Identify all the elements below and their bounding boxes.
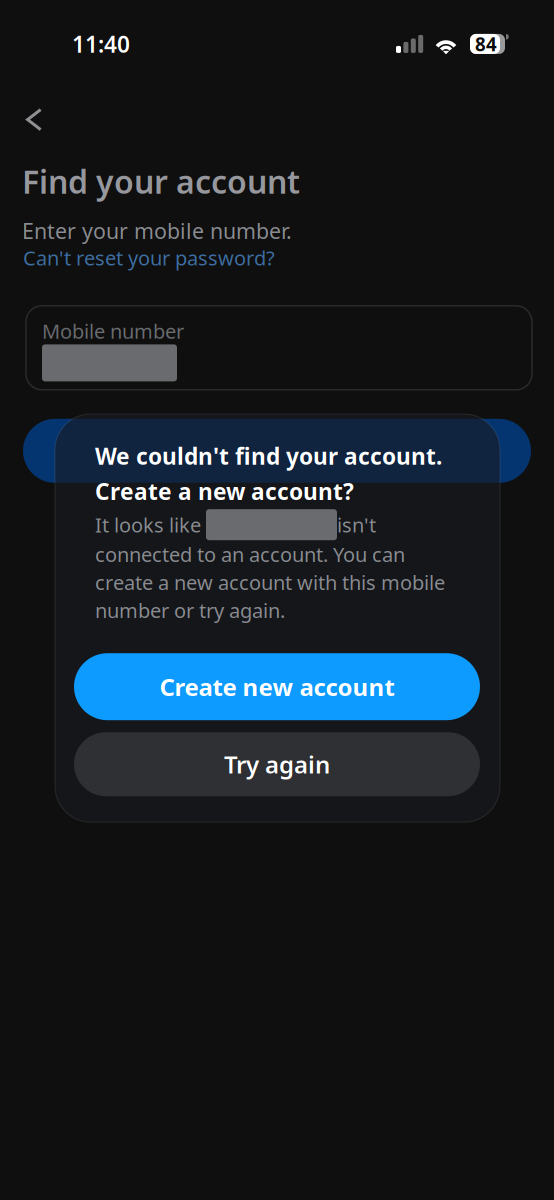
staticText: Create a new account? xyxy=(95,476,354,506)
button[interactable]: Back xyxy=(0,59,116,131)
button[interactable]: Try again xyxy=(74,732,480,796)
staticText: number or try again. xyxy=(95,597,285,623)
staticText: Next xyxy=(250,436,304,466)
staticText: We couldn't find your account. xyxy=(95,441,442,471)
button[interactable]: Can't reset your password? xyxy=(0,247,275,269)
staticText: create a new account with this mobile xyxy=(95,569,445,595)
staticText: Mobile number xyxy=(42,318,184,344)
staticText: Can't reset your password? xyxy=(23,244,275,271)
staticText: It looks like xyxy=(95,511,206,538)
staticText: 84 xyxy=(475,32,497,56)
button[interactable]: Next xyxy=(23,419,531,483)
button[interactable]: Create new account xyxy=(74,653,480,720)
staticText: 11:40 xyxy=(72,29,130,59)
staticText: Enter your mobile number. xyxy=(22,216,292,245)
staticText: Try again xyxy=(224,748,330,780)
staticText: Find your account xyxy=(22,160,300,202)
staticText: Create new account xyxy=(159,671,394,703)
staticText: connected to an account. You can xyxy=(95,541,405,567)
staticText: isn't xyxy=(337,511,376,538)
